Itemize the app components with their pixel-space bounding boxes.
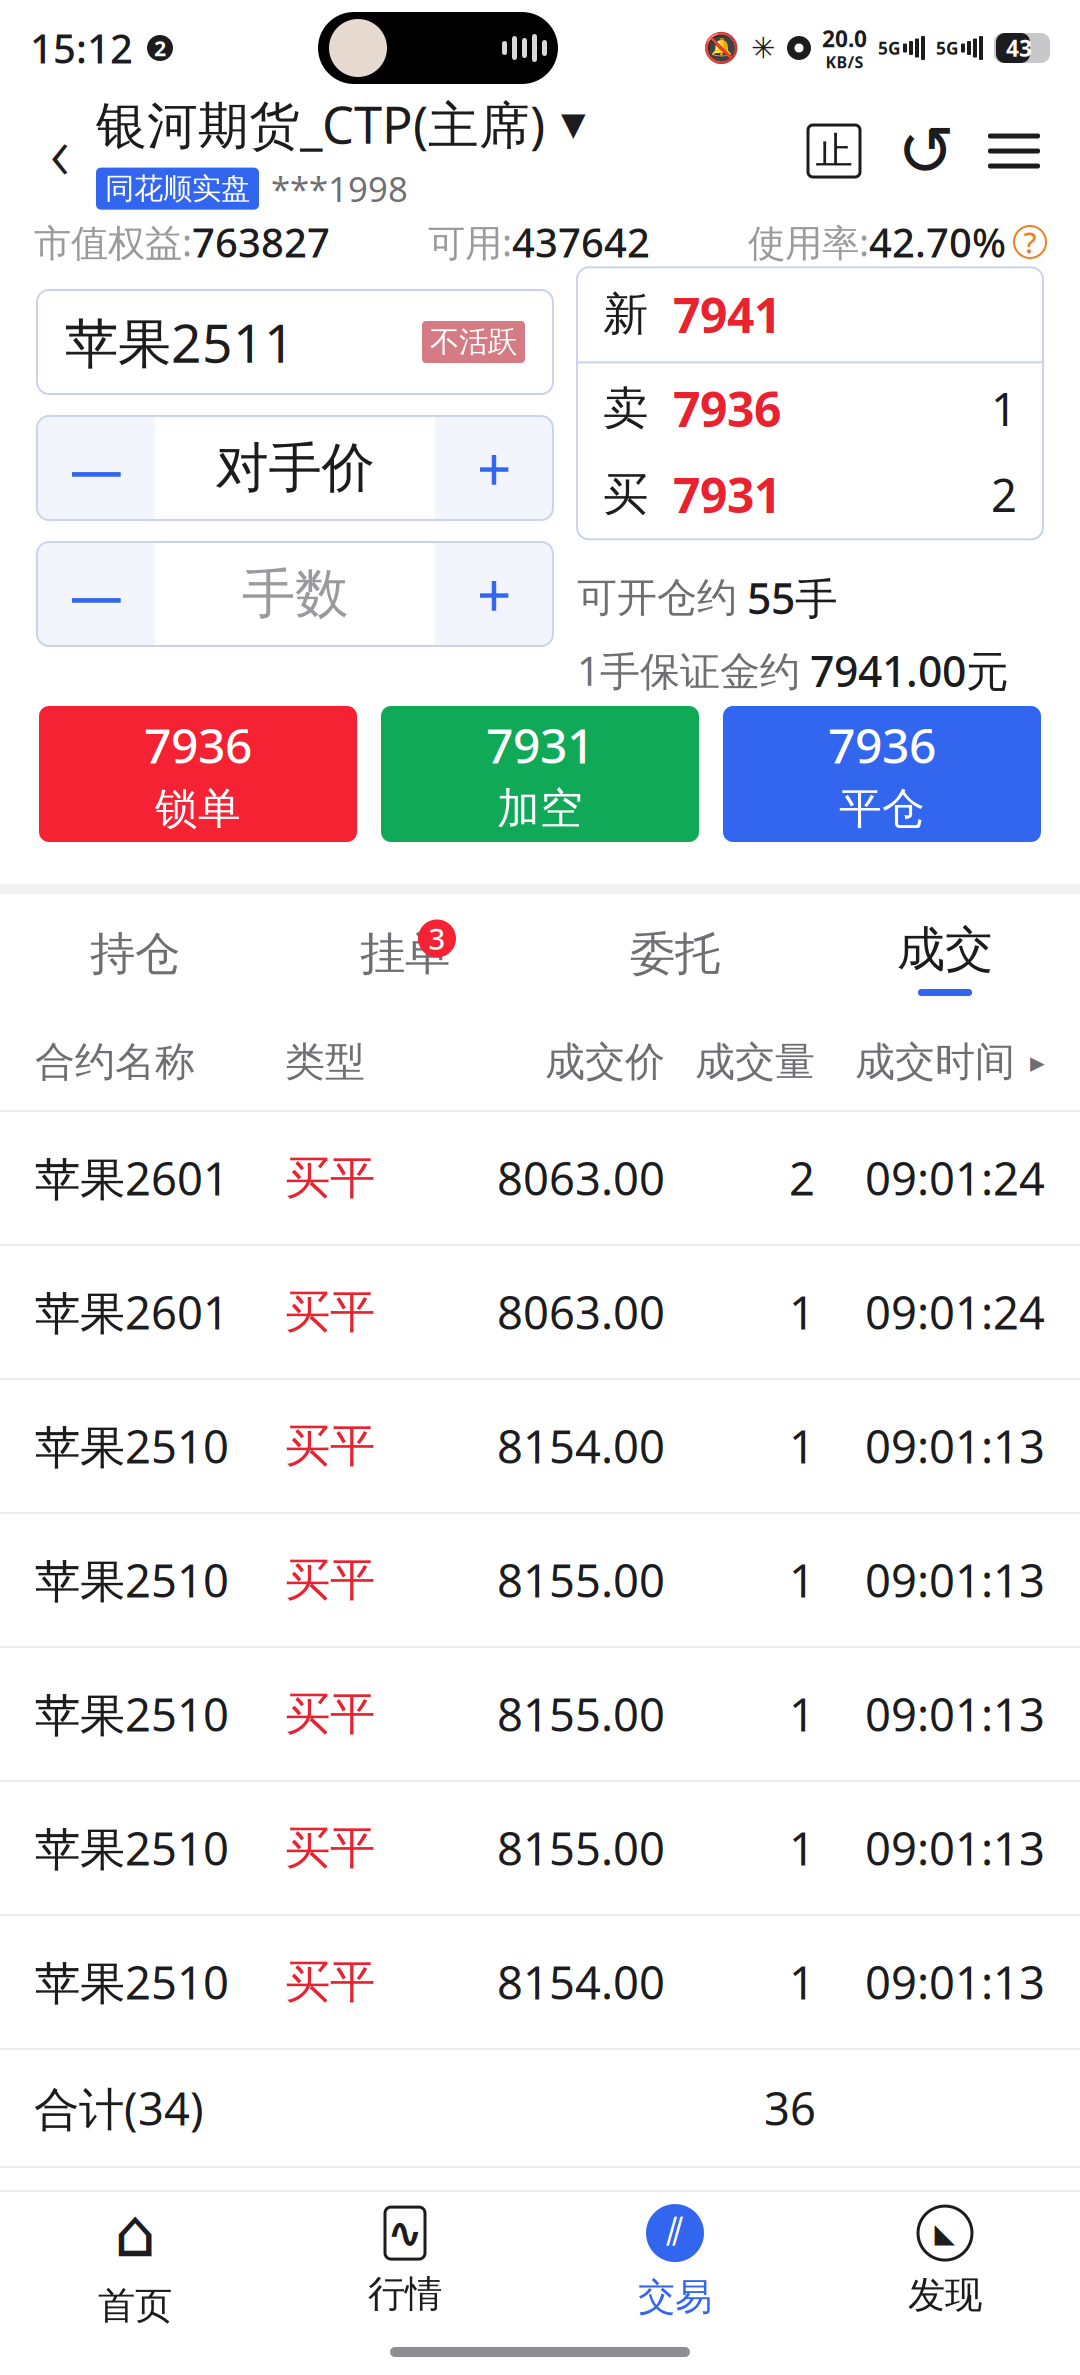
staticText: 同花顺实盘: [105, 171, 250, 207]
button[interactable]: 使用率说明: [1014, 226, 1046, 258]
staticText: 42.70%: [869, 215, 1006, 268]
button[interactable]: 成交: [810, 894, 1080, 1014]
staticText: 7941.00元: [810, 642, 1009, 699]
button[interactable]: 菜单: [972, 103, 1056, 199]
staticText: 3: [428, 919, 445, 958]
button[interactable]: ∿: [270, 2192, 540, 2332]
staticText: 09:01:13: [865, 1550, 1045, 1610]
staticText: 1手保证金约: [577, 644, 800, 697]
staticText: 苹果2510: [35, 1952, 229, 2012]
button[interactable]: 挂单: [270, 894, 540, 1014]
staticText: 09:01:13: [865, 1818, 1045, 1878]
staticText: 7931: [486, 713, 594, 777]
staticText: 银河期货_CTP(主席): [96, 90, 545, 158]
staticText: +: [476, 553, 511, 635]
staticText: KB/S: [825, 51, 863, 73]
staticText: 2: [991, 464, 1017, 524]
staticText: 苹果2601: [35, 1282, 229, 1342]
staticText: 7936: [144, 713, 252, 777]
button[interactable]: 7936: [723, 706, 1041, 842]
staticText: 43: [1006, 33, 1032, 63]
staticText: 成交量: [695, 1037, 815, 1086]
staticText: 苹果2510: [35, 1416, 229, 1476]
staticText: 成交: [897, 920, 993, 979]
staticText: 8155.00: [497, 1550, 665, 1610]
staticText: 苹果2601: [35, 1148, 229, 1208]
staticText: 持仓: [90, 926, 180, 982]
staticText: 买平: [285, 1418, 375, 1474]
button[interactable]: 手数: [155, 542, 435, 646]
staticText: 合计(34): [34, 2078, 204, 2138]
staticText: 买平: [285, 1954, 375, 2010]
staticText: 加空: [497, 783, 583, 835]
staticText: 5G: [936, 36, 959, 59]
staticText: 平仓: [839, 783, 925, 835]
staticText: 8063.00: [497, 1148, 665, 1208]
staticText: 行情: [368, 2271, 442, 2317]
button[interactable]: ⫽: [540, 2192, 810, 2332]
staticText: 买平: [285, 1284, 375, 1340]
staticText: 09:01:24: [865, 1148, 1045, 1208]
button[interactable]: 增加: [435, 542, 553, 646]
staticText: 1: [789, 1416, 815, 1476]
staticText: 763827: [192, 215, 330, 268]
staticText: 7931: [673, 462, 781, 526]
button[interactable]: 减少: [37, 416, 155, 520]
staticText: +: [476, 427, 511, 509]
staticText: 不活跃: [430, 324, 517, 360]
staticText: ✳: [751, 31, 776, 65]
staticText: 8155.00: [497, 1684, 665, 1744]
button[interactable]: ⌂: [0, 2192, 270, 2332]
staticText: 买平: [285, 1552, 375, 1608]
button[interactable]: 减少: [37, 542, 155, 646]
staticText: 1: [789, 1282, 815, 1342]
staticText: ⌂: [114, 2195, 156, 2271]
button[interactable]: 对手价: [155, 416, 435, 520]
staticText: —: [69, 433, 122, 503]
button[interactable]: 委托: [540, 894, 810, 1014]
staticText: 8063.00: [497, 1282, 665, 1342]
staticText: 首页: [98, 2283, 172, 2329]
staticText: 成交价: [545, 1037, 665, 1086]
button[interactable]: 刷新: [880, 103, 972, 199]
button[interactable]: 银河期货_CTP(主席): [96, 90, 586, 158]
button[interactable]: 增加: [435, 416, 553, 520]
staticText: 手数: [242, 561, 348, 627]
staticText: 1: [991, 378, 1017, 438]
staticText: 买平: [285, 1150, 375, 1206]
staticText: 买平: [285, 1686, 375, 1742]
staticText: 市值权益:: [34, 217, 192, 267]
staticText: 合约名称: [35, 1037, 195, 1086]
staticText: 对手价: [215, 435, 374, 501]
staticText: 委托: [630, 926, 720, 982]
button[interactable]: ◣: [810, 2192, 1080, 2332]
staticText: 锁单: [155, 783, 241, 835]
staticText: 8154.00: [497, 1952, 665, 2012]
staticText: 挂单: [360, 926, 450, 982]
button[interactable]: 返回: [24, 103, 96, 199]
staticText: 可用:: [428, 217, 512, 267]
staticText: 发现: [908, 2272, 982, 2318]
staticText: 苹果2510: [35, 1684, 229, 1744]
staticText: 成交时间: [855, 1037, 1015, 1086]
button[interactable]: 止损: [788, 103, 880, 199]
staticText: 类型: [285, 1037, 365, 1086]
staticText: 8154.00: [497, 1416, 665, 1476]
staticText: 20.0: [822, 23, 867, 53]
staticText: 09:01:13: [865, 1416, 1045, 1476]
staticText: 7936: [828, 713, 936, 777]
staticText: ∿: [387, 2209, 423, 2257]
button[interactable]: 7936: [39, 706, 357, 842]
staticText: 使用率:: [748, 217, 869, 267]
staticText: ▸: [1030, 1045, 1045, 1079]
button[interactable]: 持仓: [0, 894, 270, 1014]
staticText: 09:01:13: [865, 1684, 1045, 1744]
staticText: 09:01:13: [865, 1952, 1045, 2012]
staticText: 1: [789, 1684, 815, 1744]
button[interactable]: 7931: [381, 706, 699, 842]
button[interactable]: 苹果2511: [37, 290, 553, 394]
staticText: 2: [154, 34, 166, 62]
staticText: 苹果2510: [35, 1818, 229, 1878]
staticText: 55手: [747, 569, 838, 626]
staticText: 买: [603, 466, 648, 522]
